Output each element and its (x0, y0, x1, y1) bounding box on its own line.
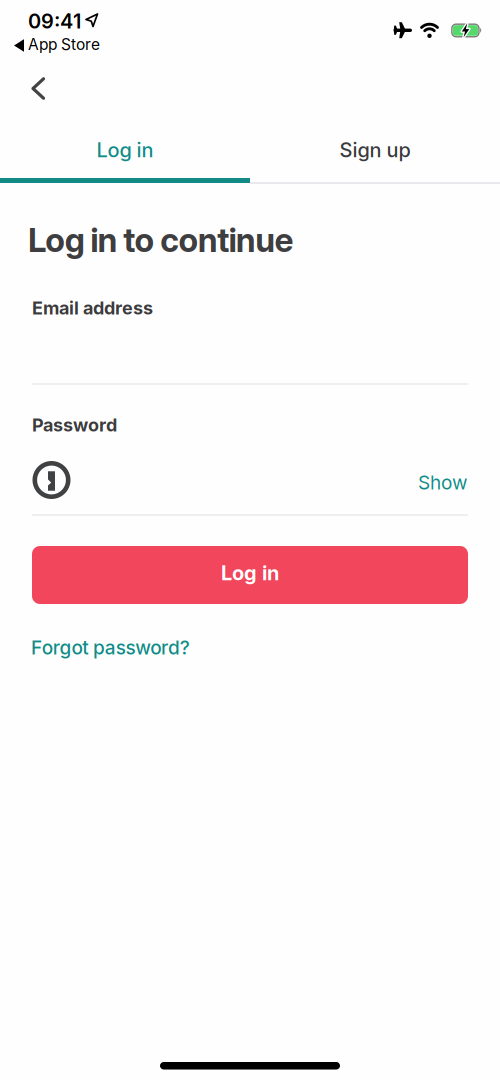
staticText: Password (32, 414, 117, 436)
staticText: Log in (221, 561, 279, 585)
staticText: App Store (28, 35, 100, 54)
button[interactable]: Back to App Store (14, 35, 100, 54)
staticText: Log in (96, 138, 153, 162)
button[interactable]: Forgot password? (31, 636, 190, 659)
button[interactable]: Back (0, 69, 46, 108)
staticText: Log in to continue (28, 220, 293, 260)
staticText: 09:41 (28, 9, 81, 33)
staticText: Sign up (339, 138, 410, 162)
staticText: Email address (32, 297, 153, 319)
button[interactable]: Log in (0, 128, 250, 172)
button[interactable]: Log in (32, 546, 468, 604)
button[interactable]: Show (418, 471, 468, 494)
staticText: Forgot password? (31, 636, 190, 659)
button[interactable]: Sign up (250, 128, 500, 172)
staticText: Show (418, 471, 468, 494)
button[interactable]: 1Password autofill (31, 460, 71, 500)
